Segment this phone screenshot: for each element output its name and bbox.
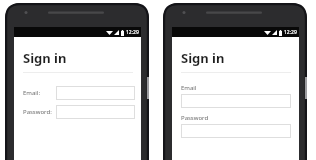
staticText: Email: bbox=[23, 89, 41, 97]
staticText: Sign in bbox=[23, 49, 67, 67]
staticText: 12:29 bbox=[284, 29, 297, 36]
button[interactable]: Email input bbox=[181, 94, 291, 108]
staticText: Sign in bbox=[181, 49, 225, 67]
staticText: Email bbox=[181, 84, 197, 92]
staticText: Password bbox=[181, 114, 209, 122]
button[interactable]: Email input bbox=[56, 86, 135, 100]
button[interactable]: Password input bbox=[56, 105, 135, 119]
button[interactable]: Password input bbox=[181, 124, 291, 138]
staticText: 12:29 bbox=[126, 29, 139, 36]
staticText: Password: bbox=[23, 108, 52, 116]
